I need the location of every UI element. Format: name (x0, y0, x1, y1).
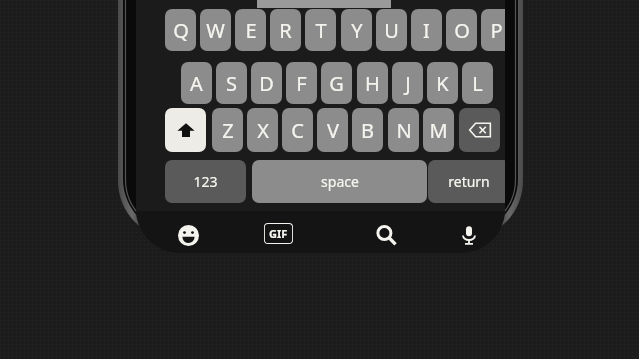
button[interactable]: N (388, 108, 419, 152)
staticText: A (190, 70, 203, 97)
staticText: return (448, 172, 490, 191)
staticText: V (327, 117, 339, 144)
staticText: O (454, 17, 470, 44)
button[interactable]: U (376, 9, 407, 51)
staticText: E (245, 17, 257, 44)
button[interactable]: I (411, 9, 442, 51)
button[interactable]: J (392, 62, 423, 104)
button[interactable]: 123 (165, 160, 246, 203)
staticText: J (405, 70, 411, 97)
staticText: M (429, 117, 448, 144)
staticText: N (396, 117, 412, 144)
staticText: GIF (269, 226, 288, 241)
staticText: Q (173, 17, 189, 44)
staticText: H (365, 70, 380, 97)
button[interactable]: S (216, 62, 247, 104)
button[interactable]: E (235, 9, 266, 51)
button[interactable]: L (462, 62, 493, 104)
staticText: S (226, 70, 237, 97)
button[interactable]: P (481, 9, 505, 51)
staticText: C (291, 117, 304, 144)
button[interactable]: K (427, 62, 458, 104)
button[interactable]: M (423, 108, 454, 152)
staticText: 123 (193, 172, 218, 191)
staticText: Y (351, 17, 363, 44)
staticText: L (472, 70, 483, 97)
staticText: R (279, 17, 292, 44)
staticText: W (206, 17, 225, 44)
button[interactable]: W (200, 9, 231, 51)
staticText: T (315, 17, 327, 44)
staticText: X (257, 117, 269, 144)
button[interactable]: Voice input (450, 216, 488, 253)
button[interactable]: O (446, 9, 477, 51)
button[interactable]: X (247, 108, 278, 152)
button[interactable]: Emoji (169, 216, 207, 253)
button[interactable]: Z (212, 108, 243, 152)
button[interactable]: B (352, 108, 383, 152)
staticText: Z (222, 117, 234, 144)
staticText: B (361, 117, 374, 144)
button[interactable]: F (286, 62, 317, 104)
staticText: space (321, 172, 359, 191)
button[interactable]: H (357, 62, 388, 104)
button[interactable]: V (317, 108, 348, 152)
button[interactable]: T (305, 9, 336, 51)
button[interactable]: Backspace (459, 108, 500, 152)
staticText: I (423, 17, 430, 44)
staticText: K (436, 70, 449, 97)
button[interactable]: Shift (165, 108, 206, 152)
button[interactable]: Y (341, 9, 372, 51)
button[interactable]: return (428, 160, 505, 203)
button[interactable]: Q (165, 9, 196, 51)
staticText: P (490, 17, 503, 44)
staticText: G (329, 70, 344, 97)
button[interactable]: Search (367, 216, 405, 253)
staticText: D (259, 70, 274, 97)
button[interactable]: D (251, 62, 282, 104)
staticText: F (296, 70, 307, 97)
button[interactable]: A (181, 62, 212, 104)
button[interactable]: R (270, 9, 301, 51)
button[interactable]: space (252, 160, 427, 203)
button[interactable]: C (282, 108, 313, 152)
staticText: U (384, 17, 399, 44)
button[interactable]: GIF (260, 218, 296, 248)
button[interactable]: G (321, 62, 352, 104)
